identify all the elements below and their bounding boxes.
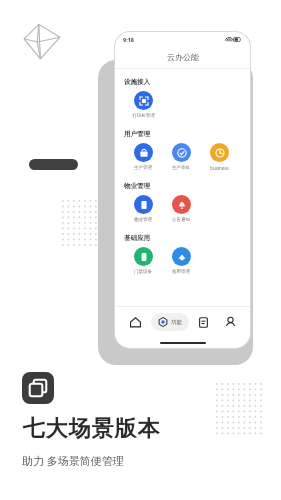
staticText: 七大场景版本 [22, 415, 160, 443]
button[interactable]: 租用管理 [162, 247, 200, 275]
button[interactable]: 生产管理 [124, 143, 162, 171]
button[interactable]: Profile [217, 307, 244, 337]
button[interactable]: business [200, 143, 238, 171]
staticText: business [210, 165, 229, 171]
staticText: 公告通知 [172, 217, 190, 223]
staticText: 9:18 [123, 36, 134, 43]
staticText: 用户管理 [124, 130, 150, 138]
staticText: 物业管理 [124, 182, 150, 190]
button[interactable]: 功能 [151, 313, 189, 331]
button[interactable]: 物业管理 [124, 195, 162, 223]
staticText: 助力 多场景简便管理 [22, 453, 124, 468]
staticText: 生产审批 [172, 165, 190, 171]
button[interactable]: 门禁设备 [124, 247, 162, 275]
staticText: 物业管理 [134, 217, 152, 223]
staticText: 生产管理 [134, 165, 152, 171]
button[interactable]: Documents [190, 307, 217, 337]
button[interactable]: 公告通知 [162, 195, 200, 223]
button[interactable]: Home [121, 307, 149, 337]
button[interactable]: 生产审批 [162, 143, 200, 171]
staticText: 租用管理 [172, 269, 190, 275]
button[interactable]: 打印机管理 [124, 91, 162, 119]
staticText: 功能 [171, 319, 182, 326]
staticText: 设施接入 [124, 78, 150, 86]
staticText: 基础应用 [124, 234, 150, 242]
other: Multi scene [22, 372, 54, 404]
staticText: 打印机管理 [132, 113, 155, 119]
staticText: 门禁设备 [134, 269, 152, 275]
staticText: 云办公能 [167, 52, 199, 62]
